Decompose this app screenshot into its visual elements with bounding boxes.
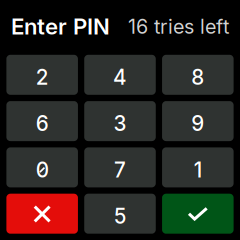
staticText: 3	[113, 111, 126, 136]
button[interactable]: 7	[84, 147, 156, 187]
staticText: 0	[36, 157, 49, 182]
button[interactable]: 6	[6, 101, 78, 141]
button[interactable]: 1	[162, 147, 234, 187]
button[interactable]: 3	[84, 101, 156, 141]
staticText: 8	[191, 65, 204, 90]
staticText: 2	[36, 65, 49, 90]
button[interactable]: 5	[84, 194, 156, 234]
button[interactable]: Cancel	[6, 194, 78, 234]
staticText: 4	[113, 65, 127, 90]
staticText: 7	[114, 157, 126, 182]
button[interactable]: 9	[162, 101, 234, 141]
button[interactable]: 0	[6, 147, 78, 187]
staticText: Enter PIN	[11, 13, 110, 40]
staticText: 16 tries left	[128, 14, 229, 38]
button[interactable]: 4	[84, 55, 156, 95]
staticText: 5	[114, 204, 126, 229]
button[interactable]: 2	[6, 55, 78, 95]
staticText: 6	[36, 111, 49, 136]
staticText: 9	[191, 111, 204, 136]
staticText: 1	[194, 157, 202, 182]
button[interactable]: 8	[162, 55, 234, 95]
button[interactable]: Confirm	[162, 194, 234, 234]
